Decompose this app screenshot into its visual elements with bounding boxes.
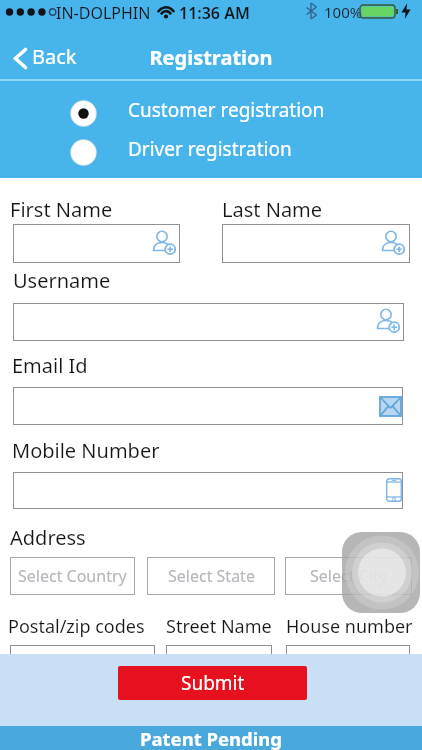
- staticText: Address: [10, 524, 86, 551]
- staticText: Patent Pending: [140, 726, 283, 750]
- button[interactable]: [166, 645, 272, 675]
- button[interactable]: Select State: [147, 557, 275, 595]
- staticText: Postal/zip codes: [8, 614, 145, 639]
- button[interactable]: [342, 532, 420, 613]
- staticText: Select Country: [18, 565, 127, 587]
- button[interactable]: Select Country: [10, 557, 135, 595]
- staticText: Back: [32, 43, 77, 70]
- button[interactable]: [222, 224, 410, 263]
- staticText: 100%: [324, 2, 363, 22]
- staticText: Email Id: [12, 352, 88, 379]
- button[interactable]: [13, 224, 180, 263]
- button[interactable]: Select City: [285, 557, 412, 595]
- button[interactable]: [13, 472, 403, 509]
- button[interactable]: Driver registration: [70, 139, 350, 166]
- button[interactable]: [13, 303, 404, 341]
- button[interactable]: [10, 645, 155, 675]
- button[interactable]: Back: [10, 42, 100, 74]
- staticText: IN-DOLPHIN: [56, 2, 151, 24]
- staticText: Registration: [0, 44, 422, 71]
- staticText: House number: [286, 614, 413, 639]
- staticText: Last Name: [222, 196, 323, 223]
- button[interactable]: Submit: [118, 666, 307, 700]
- staticText: Submit: [181, 670, 245, 696]
- staticText: 11:36 AM: [179, 2, 250, 24]
- staticText: Street Name: [166, 614, 272, 639]
- staticText: Select State: [168, 565, 255, 587]
- staticText: Username: [13, 267, 111, 294]
- staticText: Select City: [310, 565, 387, 587]
- staticText: Customer registration: [128, 97, 325, 123]
- staticText: Mobile Number: [12, 437, 160, 464]
- button[interactable]: [13, 387, 403, 425]
- staticText: First Name: [10, 196, 113, 223]
- button[interactable]: Customer registration: [70, 100, 350, 127]
- staticText: Driver registration: [128, 136, 292, 162]
- button[interactable]: [286, 645, 410, 675]
